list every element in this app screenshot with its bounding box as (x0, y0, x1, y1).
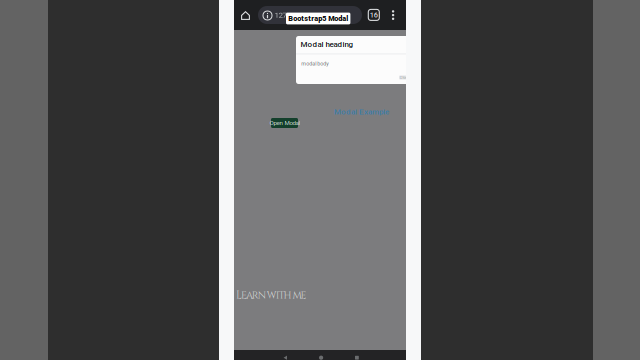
staticText: Learn with me (236, 288, 306, 302)
button[interactable]: Home (316, 353, 326, 360)
button[interactable]: More options (388, 6, 398, 24)
staticText: 16 (370, 11, 378, 19)
button[interactable]: Back (281, 353, 290, 360)
button[interactable]: Home (237, 7, 254, 24)
staticText: Bootstrap5 Modal (288, 14, 348, 23)
button[interactable]: Open Modal (271, 118, 298, 128)
staticText: modal body (301, 61, 329, 67)
staticText: Modal Example (334, 107, 389, 116)
staticText: Modal heading (300, 39, 353, 49)
staticText: 127.0.0.1:5500/index.html (274, 10, 362, 20)
button[interactable]: Switch tabs (366, 7, 382, 22)
button[interactable]: Recent apps (352, 353, 362, 360)
staticText: Open Modal (269, 119, 299, 127)
staticText: Close (399, 75, 409, 80)
button[interactable]: Close (399, 75, 410, 79)
button[interactable]: Site information (260, 8, 275, 23)
